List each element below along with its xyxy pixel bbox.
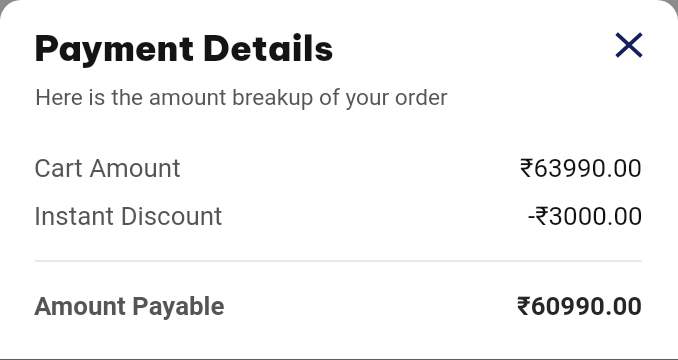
staticText: -₹3000.00 xyxy=(528,201,643,231)
staticText: Instant Discount xyxy=(34,201,223,231)
staticText: Payment Details xyxy=(34,25,334,70)
button[interactable]: Close payment details xyxy=(606,22,652,68)
staticText: ₹60990.00 xyxy=(517,291,643,321)
staticText: Here is the amount breakup of your order xyxy=(35,84,448,111)
staticText: Cart Amount xyxy=(34,153,181,183)
staticText: Amount Payable xyxy=(34,291,225,321)
staticText: ₹63990.00 xyxy=(520,153,643,183)
